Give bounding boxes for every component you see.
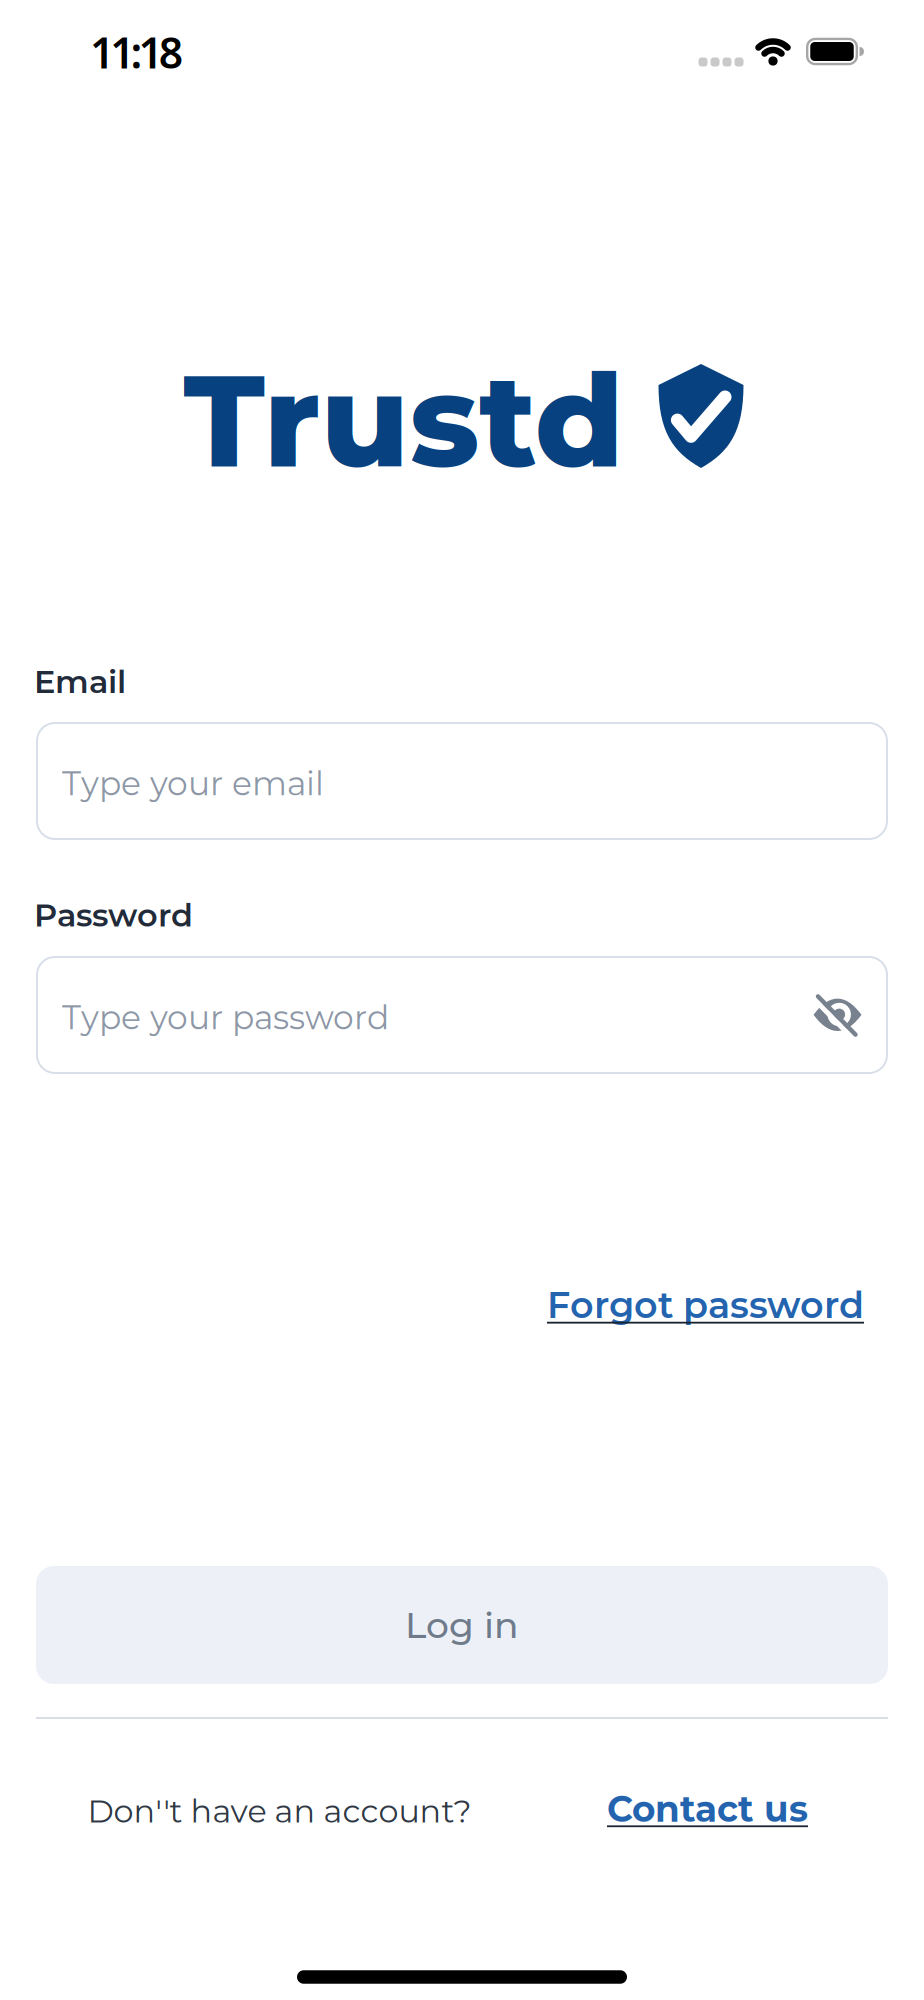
staticText: Password — [34, 895, 193, 934]
staticText: Contact us — [607, 1787, 808, 1831]
staticText: Trustd — [183, 342, 623, 498]
staticText: Don''t have an account? — [87, 1792, 471, 1830]
button[interactable]: Contact us — [607, 1787, 808, 1831]
button[interactable]: Type your password — [36, 956, 888, 1074]
staticText: Email — [34, 662, 126, 701]
button[interactable]: Type your email — [36, 722, 888, 840]
staticText: 11:18 — [90, 24, 183, 80]
staticText: Log in — [405, 1603, 519, 1647]
button[interactable]: Log in — [36, 1566, 888, 1684]
button[interactable]: Forgot password — [547, 1283, 864, 1327]
button[interactable]: Show password — [812, 989, 864, 1041]
staticText: Forgot password — [547, 1283, 864, 1327]
staticText: Type your email — [62, 763, 324, 803]
staticText: Type your password — [62, 997, 389, 1037]
